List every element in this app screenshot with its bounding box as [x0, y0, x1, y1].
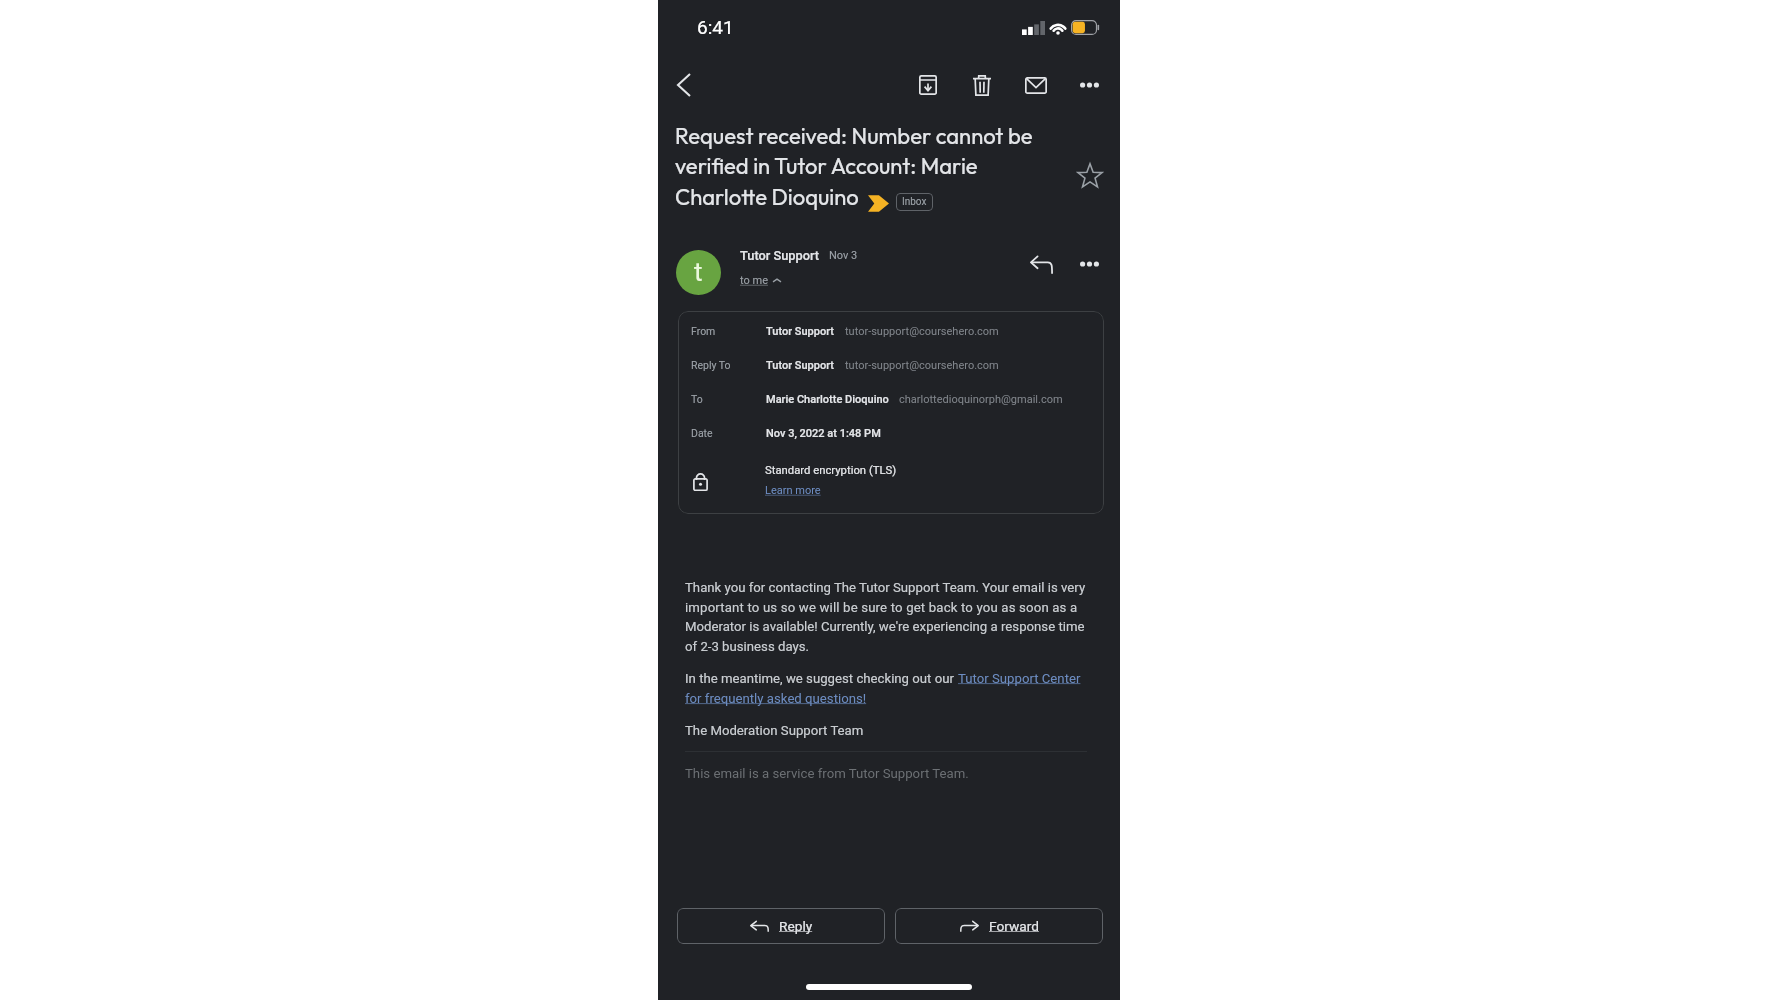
staticText: Charlotte Dioquino — [675, 183, 859, 211]
button[interactable]: Delete — [960, 63, 1004, 107]
button[interactable]: Mark unread — [1014, 63, 1058, 107]
staticText: Nov 3 — [829, 249, 858, 262]
button[interactable]: t — [676, 250, 721, 295]
staticText: tutor-support@coursehero.com — [845, 325, 999, 338]
staticText: 6:41 — [697, 16, 734, 38]
staticText: to me — [740, 274, 768, 287]
staticText: This email is a service from Tutor Suppo… — [685, 766, 969, 781]
button[interactable]: Reply — [677, 908, 885, 944]
staticText: Thank you for contacting The Tutor Suppo… — [685, 580, 1086, 595]
staticText: In the meantime, we suggest checking out… — [685, 671, 958, 686]
staticText: Reply — [779, 918, 813, 934]
staticText: tutor-support@coursehero.com — [845, 359, 999, 372]
button[interactable]: Inbox — [896, 193, 933, 211]
staticText: Request received: Number cannot be — [675, 122, 1033, 150]
staticText: To — [691, 393, 703, 405]
staticText: The Moderation Support Team — [685, 723, 864, 738]
staticText: Tutor Support — [766, 325, 835, 338]
button[interactable]: for frequently asked questions! — [685, 691, 867, 706]
staticText: Nov 3, 2022 at 1:48 PM — [766, 427, 881, 440]
staticText: verified in Tutor Account: Marie — [675, 152, 978, 180]
button[interactable]: to me — [740, 274, 781, 287]
button[interactable]: Learn more — [765, 484, 821, 497]
staticText: Marie Charlotte Dioquino — [766, 393, 889, 406]
staticText: Reply To — [691, 359, 731, 371]
button[interactable]: More options — [1067, 63, 1111, 107]
staticText: Date — [691, 427, 713, 439]
staticText: charlottedioquinorph@gmail.com — [899, 393, 1063, 406]
button[interactable]: Reply — [1021, 245, 1061, 285]
staticText: Tutor Support — [766, 359, 835, 372]
staticText: t — [694, 257, 703, 287]
button[interactable]: Forward — [895, 908, 1103, 944]
button[interactable]: From — [678, 311, 1104, 514]
staticText: Standard encryption (TLS) — [765, 464, 897, 477]
staticText: of 2-3 business days. — [685, 639, 809, 654]
button[interactable]: Tutor Support Center — [958, 671, 1081, 686]
staticText: Forward — [989, 918, 1039, 934]
button[interactable]: Back — [661, 63, 705, 107]
staticText: Tutor Support — [740, 248, 820, 263]
staticText: From — [691, 325, 716, 337]
button[interactable]: Archive — [906, 63, 950, 107]
button[interactable]: Star — [1069, 155, 1111, 197]
button[interactable]: More options — [1069, 244, 1109, 284]
staticText: Moderator is available! Currently, we're… — [685, 619, 1085, 634]
staticText: important to us so we will be sure to ge… — [685, 600, 1078, 615]
staticText: Inbox — [902, 196, 927, 208]
